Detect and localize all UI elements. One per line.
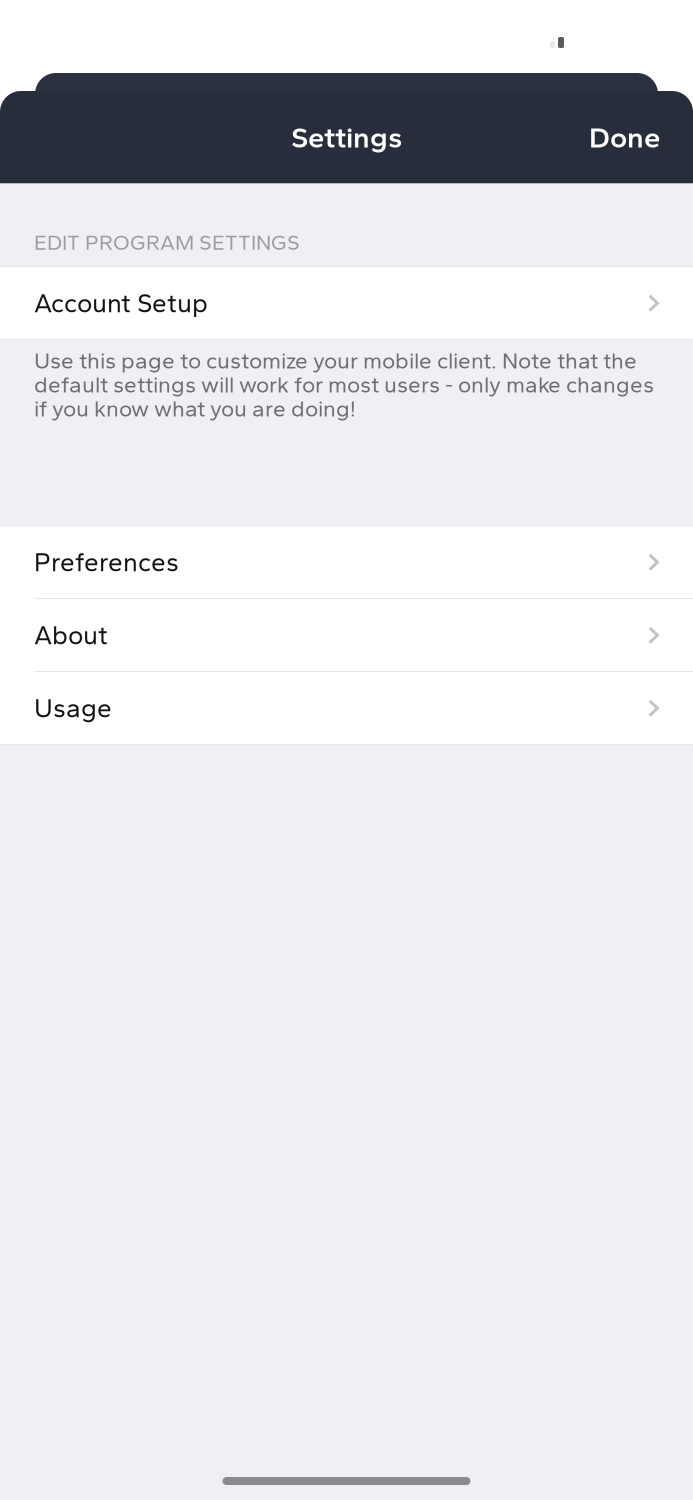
staticText: Done [589,120,660,155]
button[interactable]: Preferences [0,526,693,598]
button[interactable]: About [0,599,693,671]
staticText: Usage [34,692,112,724]
staticText: About [34,619,108,651]
staticText: Preferences [34,546,179,578]
staticText: Use this page to customize your mobile c… [34,347,654,422]
button[interactable]: Usage [0,672,693,744]
staticText: Account Setup [34,287,208,319]
staticText: Settings [291,120,402,155]
button[interactable]: Account Setup [0,267,693,339]
button[interactable]: Done [581,110,668,165]
staticText: EDIT PROGRAM SETTINGS [34,229,300,255]
